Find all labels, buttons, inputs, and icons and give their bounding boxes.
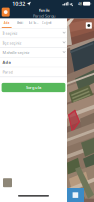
staticText: 10:32 (12, 0, 25, 7)
button[interactable]: Attached photo (3, 178, 12, 187)
button[interactable]: Home (0, 7, 10, 17)
staticText: 48 (78, 1, 82, 6)
staticText: Mahalle seçiniz (2, 50, 29, 55)
button[interactable]: İl seçiniz (0, 29, 67, 38)
button[interactable]: Locate (86, 22, 92, 29)
staticText: İl seçiniz (2, 30, 17, 36)
staticText: Mevkii (17, 21, 24, 25)
button[interactable]: İlçe seçiniz (0, 38, 67, 48)
staticText: Parsel (2, 69, 13, 75)
staticText: Parsel Sorgu (33, 13, 55, 18)
button[interactable]: Coğrafi (40, 19, 54, 28)
button[interactable]: Ada (0, 58, 67, 67)
staticText: Sorgula (26, 85, 41, 90)
button[interactable]: Mahalle seçiniz (0, 48, 67, 58)
button[interactable]: Sorgula (2, 83, 65, 92)
staticText: İlçe seçiniz (2, 40, 21, 45)
button[interactable]: Mevkii (13, 19, 27, 28)
button[interactable]: Map tools (67, 188, 84, 202)
button[interactable]: Ada (0, 19, 13, 28)
button[interactable]: Parsel (0, 67, 67, 77)
staticText: Ada (2, 60, 10, 65)
staticText: Ada (4, 21, 10, 25)
staticText: Yenile (38, 8, 49, 13)
staticText: Ad Soyad (28, 21, 38, 25)
staticText: Coğrafi (42, 21, 52, 25)
button[interactable]: Ad Soyad (27, 19, 40, 28)
